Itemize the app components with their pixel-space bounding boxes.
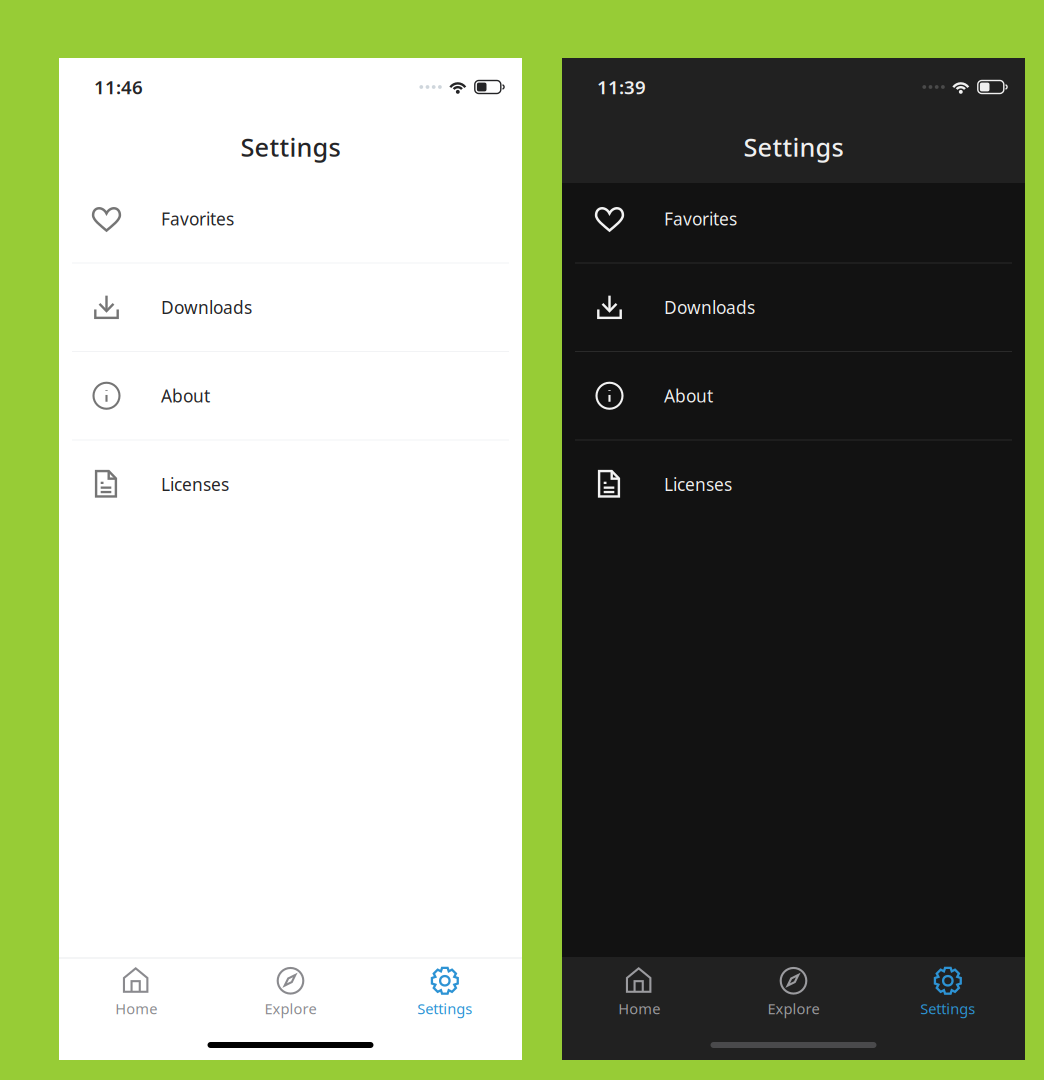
staticText: Explore (264, 999, 316, 1018)
button[interactable]: Favorites (59, 175, 522, 262)
staticText: Home (115, 999, 157, 1018)
staticText: About (664, 384, 713, 407)
button[interactable]: Licenses (59, 440, 522, 528)
staticText: Settings (743, 130, 843, 164)
button[interactable]: About (59, 352, 522, 439)
button[interactable]: Settings (871, 967, 1025, 1017)
staticText: Explore (767, 999, 819, 1018)
staticText: Licenses (664, 473, 732, 496)
button[interactable]: Home (59, 967, 213, 1017)
button[interactable]: Explore (716, 967, 871, 1017)
staticText: Settings (240, 130, 340, 164)
button[interactable]: About (562, 352, 1025, 439)
button[interactable]: Home (562, 967, 716, 1017)
staticText: Settings (417, 999, 472, 1018)
button[interactable]: Downloads (59, 263, 522, 351)
button[interactable]: Explore (213, 967, 368, 1017)
staticText: Licenses (161, 473, 229, 496)
button[interactable]: Settings (368, 967, 522, 1017)
staticText: 11:39 (597, 75, 646, 99)
staticText: Settings (920, 999, 975, 1018)
button[interactable]: Favorites (562, 175, 1025, 262)
staticText: Downloads (161, 296, 252, 319)
staticText: Downloads (664, 296, 755, 319)
staticText: About (161, 384, 210, 407)
staticText: Favorites (664, 207, 737, 230)
staticText: Home (618, 999, 660, 1018)
button[interactable]: Licenses (562, 440, 1025, 528)
button[interactable]: Downloads (562, 263, 1025, 351)
staticText: 11:46 (94, 75, 143, 99)
staticText: Favorites (161, 207, 234, 230)
